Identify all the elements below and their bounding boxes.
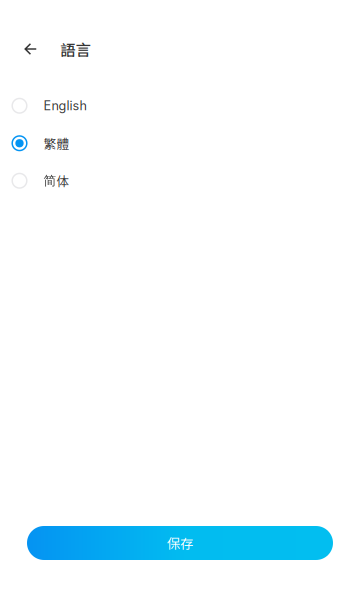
- button[interactable]: Back: [15, 34, 45, 64]
- button[interactable]: 保存: [27, 526, 333, 560]
- staticText: 保存: [167, 533, 193, 553]
- staticText: 語言: [60, 38, 90, 60]
- button[interactable]: 繁體: [0, 124, 360, 162]
- staticText: English: [43, 98, 86, 113]
- button[interactable]: 简体: [0, 162, 360, 199]
- staticText: 繁體: [43, 134, 69, 152]
- staticText: 简体: [43, 172, 69, 190]
- button[interactable]: English: [0, 87, 360, 124]
